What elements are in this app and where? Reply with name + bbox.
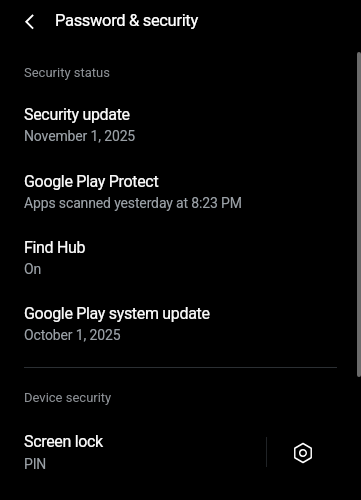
staticText: Security status <box>24 65 110 80</box>
button[interactable]: Find Hub <box>0 232 361 285</box>
button[interactable]: Security update <box>0 99 361 152</box>
staticText: Find Hub <box>24 238 86 257</box>
staticText: On <box>24 261 42 277</box>
staticText: PIN <box>24 456 47 472</box>
staticText: Google Play system update <box>24 304 210 323</box>
staticText: November 1, 2025 <box>24 128 136 144</box>
staticText: Google Play Protect <box>24 172 159 191</box>
button[interactable]: Screen lock settings <box>279 429 326 476</box>
button[interactable]: Google Play system update <box>0 298 361 351</box>
button[interactable]: Screen lock <box>0 426 266 480</box>
staticText: Device security <box>24 390 112 405</box>
staticText: Security update <box>24 105 130 124</box>
staticText: Password & security <box>55 11 198 30</box>
staticText: Apps scanned yesterday at 8:23 PM <box>24 195 242 211</box>
staticText: October 1, 2025 <box>24 327 121 343</box>
button[interactable]: Google Play Protect <box>0 166 361 219</box>
staticText: Screen lock <box>24 432 103 451</box>
button[interactable]: Navigate up <box>13 4 45 36</box>
